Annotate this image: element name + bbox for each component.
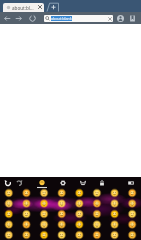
button[interactable]: Backspace bbox=[123, 177, 139, 189]
staticText: about:blank bbox=[51, 16, 72, 21]
button[interactable]: Profile bbox=[115, 13, 126, 24]
button[interactable]: New tab bbox=[46, 2, 60, 12]
staticText: about:bl… bbox=[12, 5, 34, 11]
button[interactable]: Smileys bbox=[34, 177, 50, 189]
button[interactable]: Forward bbox=[13, 13, 24, 24]
button[interactable]: Back bbox=[2, 13, 13, 24]
button[interactable]: Bookmarks bbox=[127, 13, 138, 24]
button[interactable]: Animals and nature bbox=[55, 177, 71, 189]
button[interactable]: about:bl… bbox=[3, 3, 44, 12]
button[interactable]: Close tab bbox=[36, 3, 44, 11]
button[interactable]: about:blank bbox=[44, 15, 113, 22]
button[interactable]: Reload bbox=[27, 13, 38, 24]
button[interactable]: Clear search bbox=[107, 16, 113, 22]
button[interactable]: Objects bbox=[94, 177, 110, 189]
button[interactable]: Activities bbox=[75, 177, 91, 189]
button[interactable]: Redo bbox=[11, 177, 27, 189]
button[interactable]: Undo bbox=[0, 177, 16, 189]
